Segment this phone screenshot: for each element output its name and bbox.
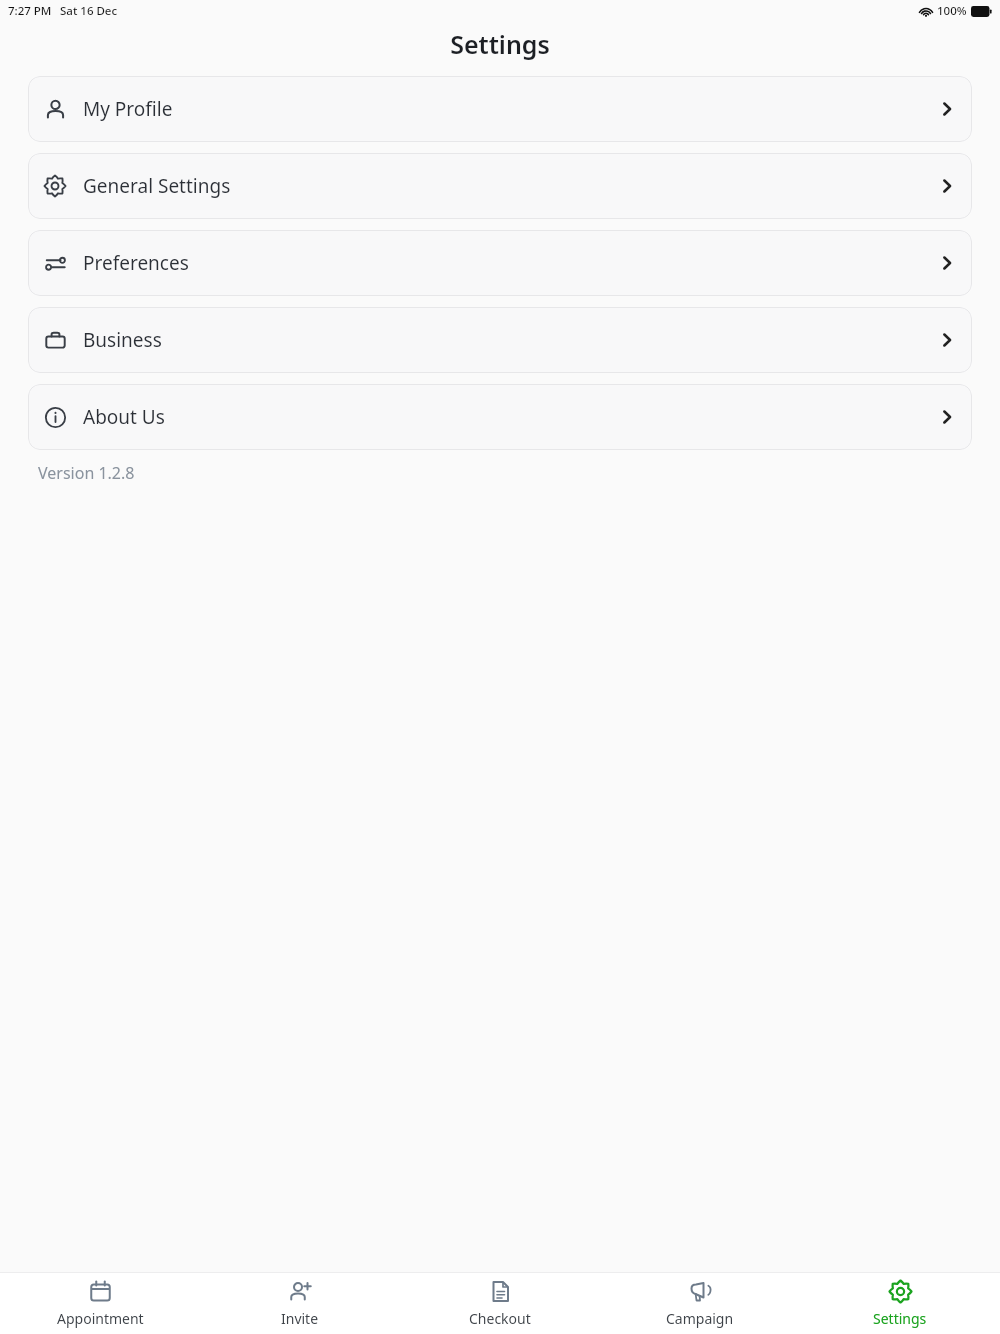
staticText: 100% [937,3,967,19]
button[interactable]: Appointment [0,1273,200,1334]
staticText: Sat 16 Dec [60,3,118,19]
button[interactable]: General Settings [28,153,972,219]
staticText: Version 1.2.8 [38,462,135,484]
button[interactable]: Invite [200,1273,400,1334]
staticText: Settings [450,27,550,61]
staticText: About Us [83,404,165,430]
staticText: Campaign [666,1309,734,1328]
staticText: Preferences [83,250,189,276]
button[interactable]: Business [28,307,972,373]
staticText: Checkout [469,1309,531,1328]
staticText: Appointment [57,1309,144,1328]
staticText: Settings [873,1309,927,1328]
staticText: Invite [281,1309,319,1328]
staticText: 7:27 PM [8,3,52,19]
button[interactable]: Campaign [600,1273,800,1334]
button[interactable]: Settings [800,1273,1000,1334]
staticText: My Profile [83,96,173,122]
button[interactable]: Preferences [28,230,972,296]
button[interactable]: Checkout [400,1273,600,1334]
staticText: Business [83,327,162,353]
staticText: General Settings [83,173,231,199]
button[interactable]: My Profile [28,76,972,142]
button[interactable]: About Us [28,384,972,450]
